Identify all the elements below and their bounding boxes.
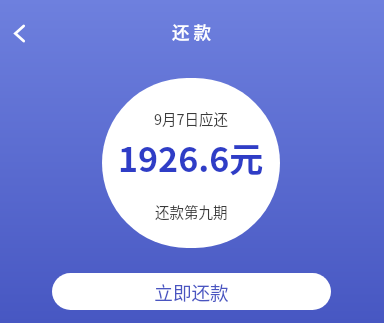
button[interactable]: 立即还款: [52, 273, 331, 310]
staticText: 还 款: [172, 19, 211, 44]
staticText: 立即还款: [154, 278, 229, 305]
button[interactable]: Back: [0, 13, 39, 53]
staticText: 还款第九期: [155, 201, 228, 222]
staticText: 1926.6元: [118, 133, 264, 182]
staticText: 9月7日应还: [154, 108, 229, 129]
